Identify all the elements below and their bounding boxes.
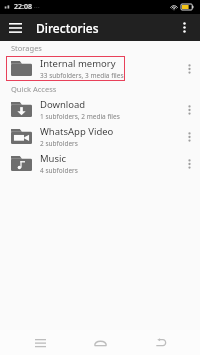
button[interactable]: Back xyxy=(140,330,180,355)
staticText: 22:08 xyxy=(14,2,32,12)
button[interactable]: Music xyxy=(0,150,200,177)
staticText: Directories xyxy=(36,20,99,36)
button[interactable]: More options for Download xyxy=(178,96,200,123)
button[interactable]: Recent apps xyxy=(20,330,60,355)
staticText: WhatsApp Video xyxy=(40,125,114,138)
staticText: 33 subfolders, 3 media files xyxy=(40,71,124,80)
staticText: Music xyxy=(40,152,67,165)
staticText: Storages xyxy=(11,43,42,53)
button[interactable]: Home xyxy=(80,330,120,355)
staticText: Internal memory xyxy=(40,57,116,70)
button[interactable]: More options for Music xyxy=(178,150,200,177)
button[interactable]: Open navigation drawer xyxy=(0,14,30,41)
button[interactable]: WhatsApp Video xyxy=(0,123,200,150)
staticText: 4 subfolders xyxy=(40,166,78,175)
button[interactable]: More options xyxy=(172,14,196,41)
staticText: Download xyxy=(40,98,86,111)
staticText: Quick Access xyxy=(11,84,57,94)
button[interactable]: More options for Internal memory xyxy=(178,55,200,82)
button[interactable]: More options for WhatsApp Video xyxy=(178,123,200,150)
staticText: 2 subfolders xyxy=(40,139,78,148)
staticText: 1 subfolders, 2 media files xyxy=(40,112,120,121)
button[interactable]: Download xyxy=(0,96,200,123)
button[interactable]: Internal memory xyxy=(0,55,200,82)
